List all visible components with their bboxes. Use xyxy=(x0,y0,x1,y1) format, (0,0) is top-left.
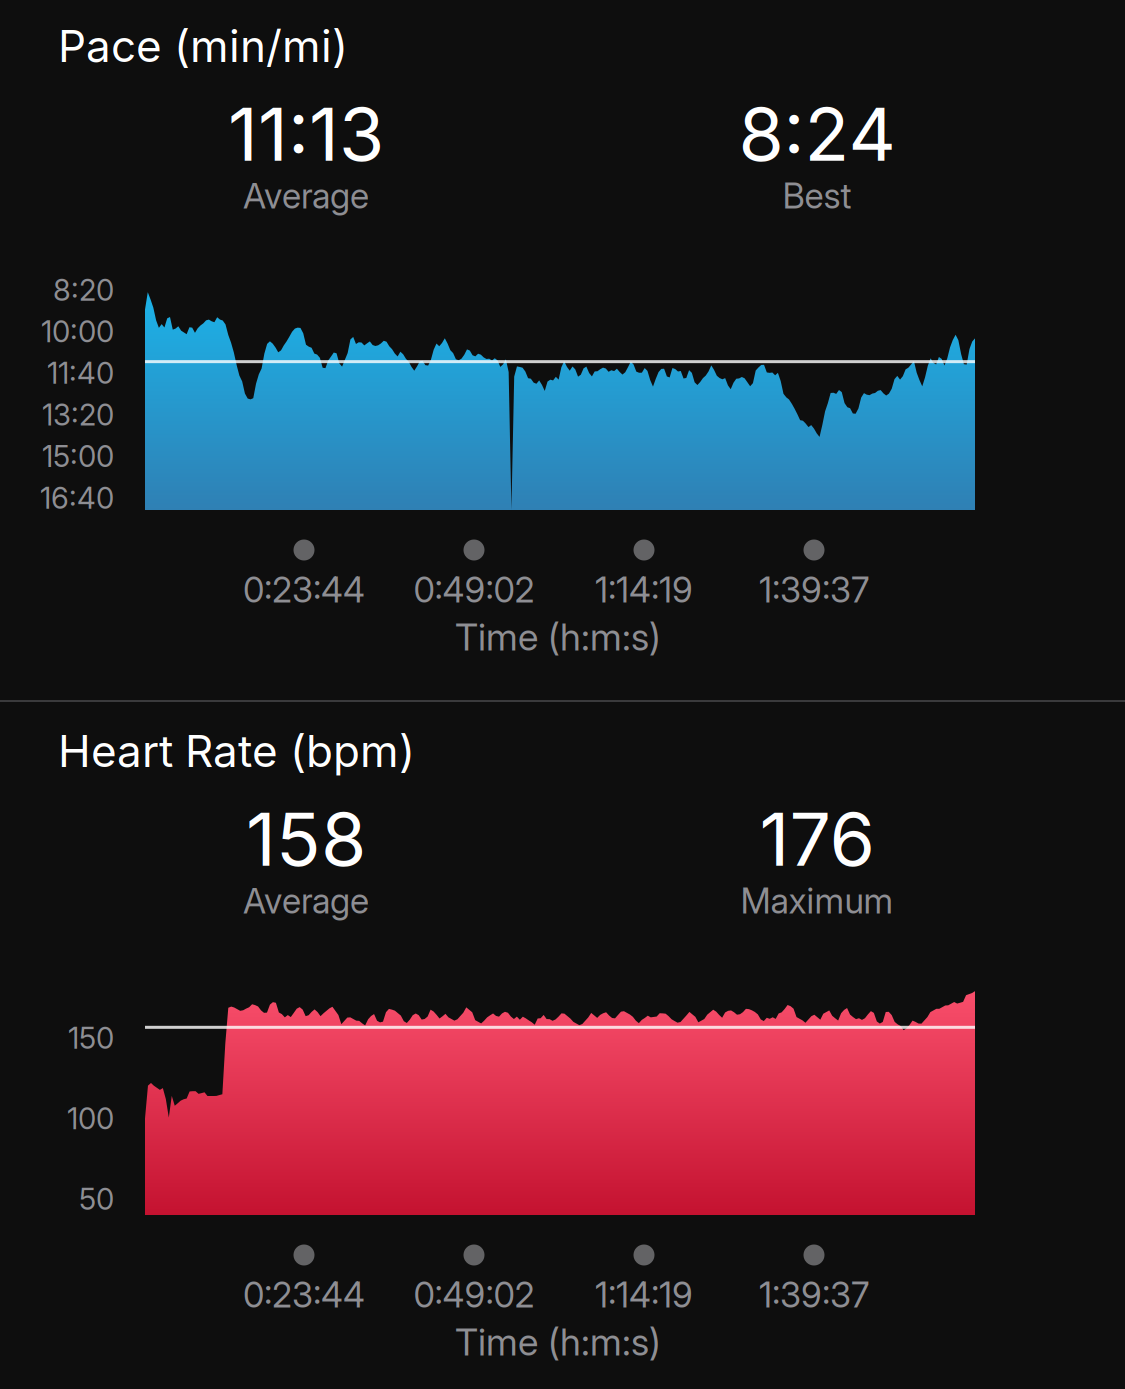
staticText: 8:24 xyxy=(738,90,895,178)
staticText: 0:49:02 xyxy=(413,569,534,611)
staticText: 11:13 xyxy=(228,90,384,178)
staticText: Maximum xyxy=(740,880,893,922)
staticText: Time (h:m:s) xyxy=(455,614,661,660)
staticText: 1:14:19 xyxy=(595,1274,693,1316)
staticText: 11:40 xyxy=(47,355,114,391)
staticText: Heart Rate (bpm) xyxy=(58,724,415,778)
staticText: 0:23:44 xyxy=(243,1274,365,1316)
staticText: 1:39:37 xyxy=(759,569,869,611)
staticText: Average xyxy=(243,175,369,217)
button[interactable]: Pace (min/mi) xyxy=(0,0,1125,700)
staticText: 8:20 xyxy=(53,272,114,308)
staticText: 15:00 xyxy=(42,439,114,474)
staticText: 176 xyxy=(759,795,874,883)
staticText: 0:49:02 xyxy=(413,1274,534,1316)
staticText: 1:39:37 xyxy=(759,1274,869,1316)
staticText: Average xyxy=(243,880,369,922)
staticText: 10:00 xyxy=(41,314,114,349)
staticText: Best xyxy=(782,175,851,217)
staticText: Time (h:m:s) xyxy=(455,1319,661,1365)
staticText: 50 xyxy=(79,1181,114,1217)
staticText: 158 xyxy=(246,795,366,883)
staticText: 150 xyxy=(68,1020,114,1056)
staticText: Pace (min/mi) xyxy=(58,19,348,73)
staticText: 0:23:44 xyxy=(243,569,365,611)
staticText: 100 xyxy=(67,1101,114,1136)
staticText: 1:14:19 xyxy=(595,569,693,611)
staticText: 13:20 xyxy=(42,397,114,433)
staticText: 16:40 xyxy=(40,480,114,516)
button[interactable]: Heart Rate (bpm) xyxy=(0,705,1125,1389)
